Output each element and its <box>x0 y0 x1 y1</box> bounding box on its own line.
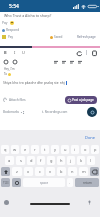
staticText: m <box>82 169 86 174</box>
button[interactable]: a <box>5 156 14 165</box>
staticText: k <box>80 158 83 163</box>
button[interactable]: b <box>57 167 66 176</box>
staticText: w <box>13 147 17 152</box>
button[interactable]: Post a job page <box>65 96 97 104</box>
button[interactable]: k <box>77 156 85 165</box>
button[interactable]: o <box>81 145 89 154</box>
button[interactable]: z <box>12 167 22 176</box>
staticText: t <box>44 147 46 152</box>
staticText: Pay <box>8 35 14 39</box>
button[interactable]: Done <box>85 135 96 140</box>
button[interactable]: h <box>57 156 65 165</box>
staticText: I <box>14 50 16 55</box>
staticText: return <box>83 181 92 185</box>
button[interactable]: x <box>24 167 33 176</box>
staticText: Bookmarks <box>3 110 19 114</box>
button[interactable]: y <box>51 145 59 154</box>
staticText: y <box>54 147 57 152</box>
staticText: e <box>24 147 27 152</box>
staticText: ?123 <box>3 181 9 185</box>
button[interactable]: f <box>37 156 45 165</box>
staticText: v <box>49 169 52 174</box>
staticText: l <box>90 158 92 163</box>
staticText: g <box>50 158 53 163</box>
button[interactable]: Voice input <box>87 200 92 205</box>
button[interactable]: Undo <box>76 50 82 56</box>
staticText: Shiya kho tro pkadnr dhe pszkq ste nhj <box>3 80 65 85</box>
button[interactable]: d <box>27 156 35 165</box>
button[interactable]: return <box>75 178 99 187</box>
button[interactable]: s <box>16 156 25 165</box>
staticText: 5:54 <box>9 3 19 10</box>
button[interactable]: v <box>46 167 55 176</box>
staticText: q <box>4 147 7 152</box>
button[interactable]: I <box>12 49 17 56</box>
staticText: x <box>27 169 30 174</box>
button[interactable]: B <box>3 49 8 56</box>
staticText: o <box>84 147 87 152</box>
staticText: j <box>70 158 72 163</box>
button[interactable]: p <box>91 145 99 154</box>
button[interactable]: Attach files <box>3 98 26 102</box>
button[interactable]: g <box>47 156 55 165</box>
staticText: Who Trust a Aloha to sharp? <box>4 13 52 18</box>
staticText: i <box>74 147 76 152</box>
button[interactable]: w <box>11 145 19 154</box>
staticText: n <box>71 169 74 174</box>
staticText: p <box>94 147 97 152</box>
staticText: Post a job page <box>72 98 94 102</box>
button[interactable]: Change language <box>4 200 9 205</box>
button[interactable]: i <box>71 145 79 154</box>
staticText: Attach files <box>9 98 26 102</box>
staticText: d <box>30 158 33 163</box>
staticText: t. Recordings.com <box>42 110 68 114</box>
button[interactable]: j <box>67 156 75 165</box>
button[interactable]: Scroll to top <box>87 107 97 117</box>
button[interactable]: Shift <box>1 167 10 176</box>
staticText: space <box>40 181 49 185</box>
button[interactable]: Format <box>3 59 8 64</box>
button[interactable]: Format 3 <box>77 59 82 64</box>
button[interactable]: Format 2 <box>69 59 74 64</box>
staticText: Pay <box>2 21 8 25</box>
staticText: s <box>20 158 22 163</box>
button[interactable]: l <box>87 156 95 165</box>
button[interactable]: t <box>41 145 49 154</box>
staticText: Hey, I'm <box>4 67 15 71</box>
staticText: c <box>39 169 41 174</box>
staticText: Respond <box>6 28 20 32</box>
staticText: z <box>16 169 18 174</box>
button[interactable]: U <box>21 49 26 56</box>
staticText: h <box>60 158 63 163</box>
button[interactable]: q <box>1 145 9 154</box>
button[interactable]: . <box>67 178 73 187</box>
staticText: r <box>34 147 36 152</box>
staticText: u <box>64 147 67 152</box>
button[interactable]: Numbers <box>1 178 10 187</box>
staticText: Saved <box>54 35 63 39</box>
staticText: B <box>4 50 7 55</box>
button[interactable]: Backspace <box>90 167 99 176</box>
button[interactable]: n <box>68 167 77 176</box>
button[interactable]: e <box>21 145 29 154</box>
staticText: . <box>69 180 71 185</box>
button[interactable]: r <box>31 145 39 154</box>
button[interactable]: Emoji <box>12 178 21 187</box>
button[interactable]: u <box>61 145 69 154</box>
staticText: a <box>8 158 11 163</box>
button[interactable]: space <box>23 178 65 187</box>
button[interactable]: Format 0 <box>53 59 58 64</box>
staticText: U <box>22 50 25 55</box>
button[interactable]: Copy <box>91 50 97 56</box>
button[interactable]: Format <box>12 59 17 64</box>
staticText: Refresh page <box>77 35 96 39</box>
button[interactable]: c <box>35 167 44 176</box>
button[interactable]: Format 1 <box>61 59 66 64</box>
staticText: Ta <box>4 72 7 76</box>
staticText: f <box>40 158 42 163</box>
staticText: b <box>60 169 63 174</box>
button[interactable]: m <box>79 167 88 176</box>
button[interactable]: Respond <box>2 28 20 32</box>
